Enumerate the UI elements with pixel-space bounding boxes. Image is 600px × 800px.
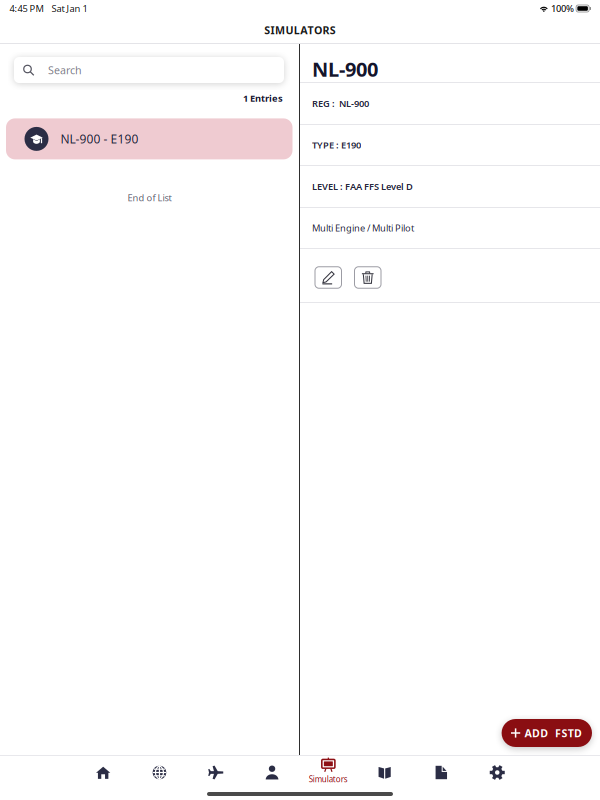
button[interactable]: Web xyxy=(131,756,188,787)
button[interactable]: Flights xyxy=(188,756,244,787)
button[interactable]: Delete xyxy=(354,267,381,288)
staticText: 1 Entries xyxy=(243,92,283,104)
staticText: Simulators xyxy=(309,774,348,784)
staticText: REG : NL-900 xyxy=(312,97,369,110)
staticText: 100% xyxy=(551,2,574,15)
button[interactable]: Simulators xyxy=(300,756,356,787)
button[interactable]: Library xyxy=(356,756,413,787)
button[interactable]: Profile xyxy=(244,756,300,787)
staticText: SIMULATORS xyxy=(264,23,336,37)
staticText: End of List xyxy=(127,191,171,204)
button[interactable]: Documents xyxy=(413,756,469,787)
staticText: ADD FSTD xyxy=(525,726,582,740)
button[interactable]: NL-900 - E190 xyxy=(6,118,292,159)
staticText: Search xyxy=(48,63,82,77)
button[interactable]: Home xyxy=(75,756,131,787)
button[interactable]: Settings xyxy=(469,756,525,787)
staticText: LEVEL : FAA FFS Level D xyxy=(312,180,413,193)
staticText: Sat Jan 1 xyxy=(51,2,87,15)
button[interactable]: Edit xyxy=(315,267,341,288)
staticText: NL-900 xyxy=(312,56,378,82)
staticText: 4:45 PM xyxy=(9,2,43,15)
button[interactable]: ADD FSTD xyxy=(502,719,592,747)
staticText: TYPE : E190 xyxy=(312,139,361,151)
staticText: Multi Engine / Multi Pilot xyxy=(312,222,414,234)
staticText: NL-900 - E190 xyxy=(60,131,138,147)
